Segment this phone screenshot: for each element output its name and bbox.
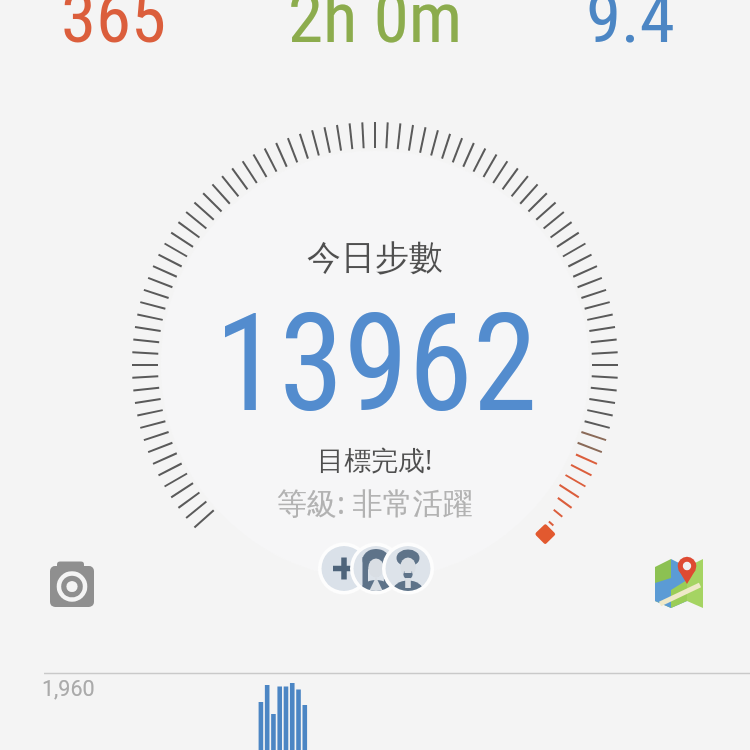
- staticText: 365: [61, 0, 167, 59]
- button[interactable]: [650, 552, 710, 612]
- staticText: 13962: [215, 285, 537, 443]
- button[interactable]: [318, 542, 434, 595]
- button[interactable]: 2h 0m: [275, 0, 475, 59]
- button[interactable]: 365: [14, 0, 214, 59]
- staticText: 2h 0m: [288, 0, 463, 59]
- staticText: 今日步數: [307, 236, 443, 279]
- staticText: 9.4: [586, 0, 675, 59]
- button[interactable]: 9.4: [530, 0, 730, 59]
- staticText: 目標完成!: [317, 441, 433, 478]
- staticText: 等級: 非常活躍: [277, 482, 473, 523]
- staticText: 1,960: [42, 676, 95, 701]
- button[interactable]: [44, 556, 100, 612]
